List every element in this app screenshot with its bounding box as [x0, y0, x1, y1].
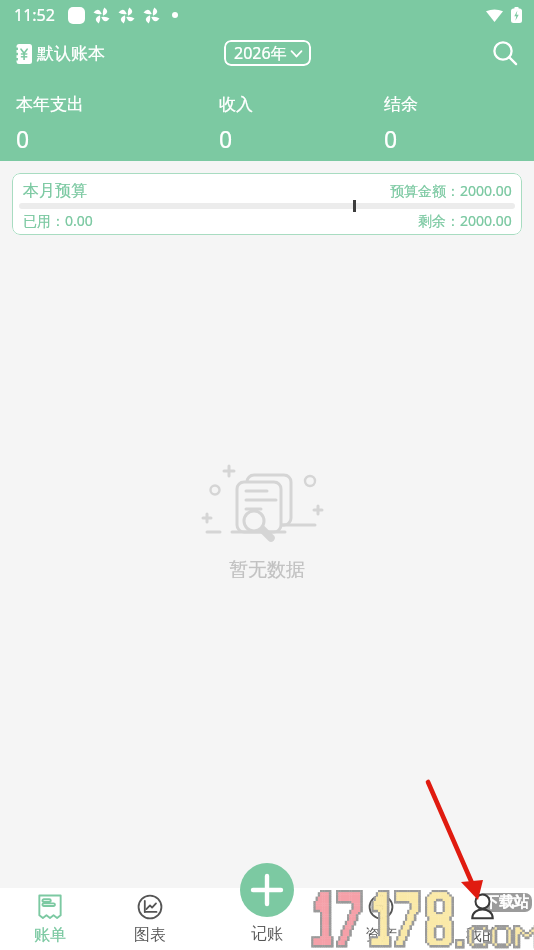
button[interactable]: 资产	[343, 888, 419, 950]
staticText: 本月预算	[23, 181, 87, 201]
button[interactable]: 图表	[112, 888, 188, 950]
staticText: 图表	[134, 925, 166, 945]
staticText: 默认账本	[37, 43, 105, 64]
button[interactable]: 记账	[240, 888, 294, 950]
staticText: 0	[16, 123, 30, 154]
button[interactable]: 2026年	[224, 40, 311, 66]
staticText: 收入	[219, 94, 253, 115]
button[interactable]: 账单	[12, 888, 88, 950]
staticText: 下载站	[484, 893, 529, 912]
staticText: 剩余：2000.00	[418, 211, 512, 230]
staticText: 预算金额：2000.00	[390, 181, 512, 200]
staticText: 我的	[466, 925, 498, 945]
staticText: 结余	[384, 94, 418, 115]
staticText: 本年支出	[16, 94, 84, 115]
staticText: 0	[219, 123, 233, 154]
staticText: 2026年	[234, 42, 287, 64]
staticText: 账单	[34, 925, 66, 945]
button[interactable]: 默认账本	[14, 43, 105, 64]
button[interactable]: 本月预算	[12, 173, 522, 235]
button[interactable]: 我的	[444, 888, 520, 950]
button[interactable]: Search	[486, 35, 522, 71]
staticText: 11:52	[14, 4, 55, 26]
staticText: 资产	[365, 925, 397, 945]
staticText: 0	[384, 123, 398, 154]
staticText: 已用：0.00	[23, 211, 93, 230]
staticText: 记账	[251, 924, 283, 944]
button[interactable]: Add record	[240, 863, 294, 917]
staticText: 暂无数据	[229, 558, 305, 582]
